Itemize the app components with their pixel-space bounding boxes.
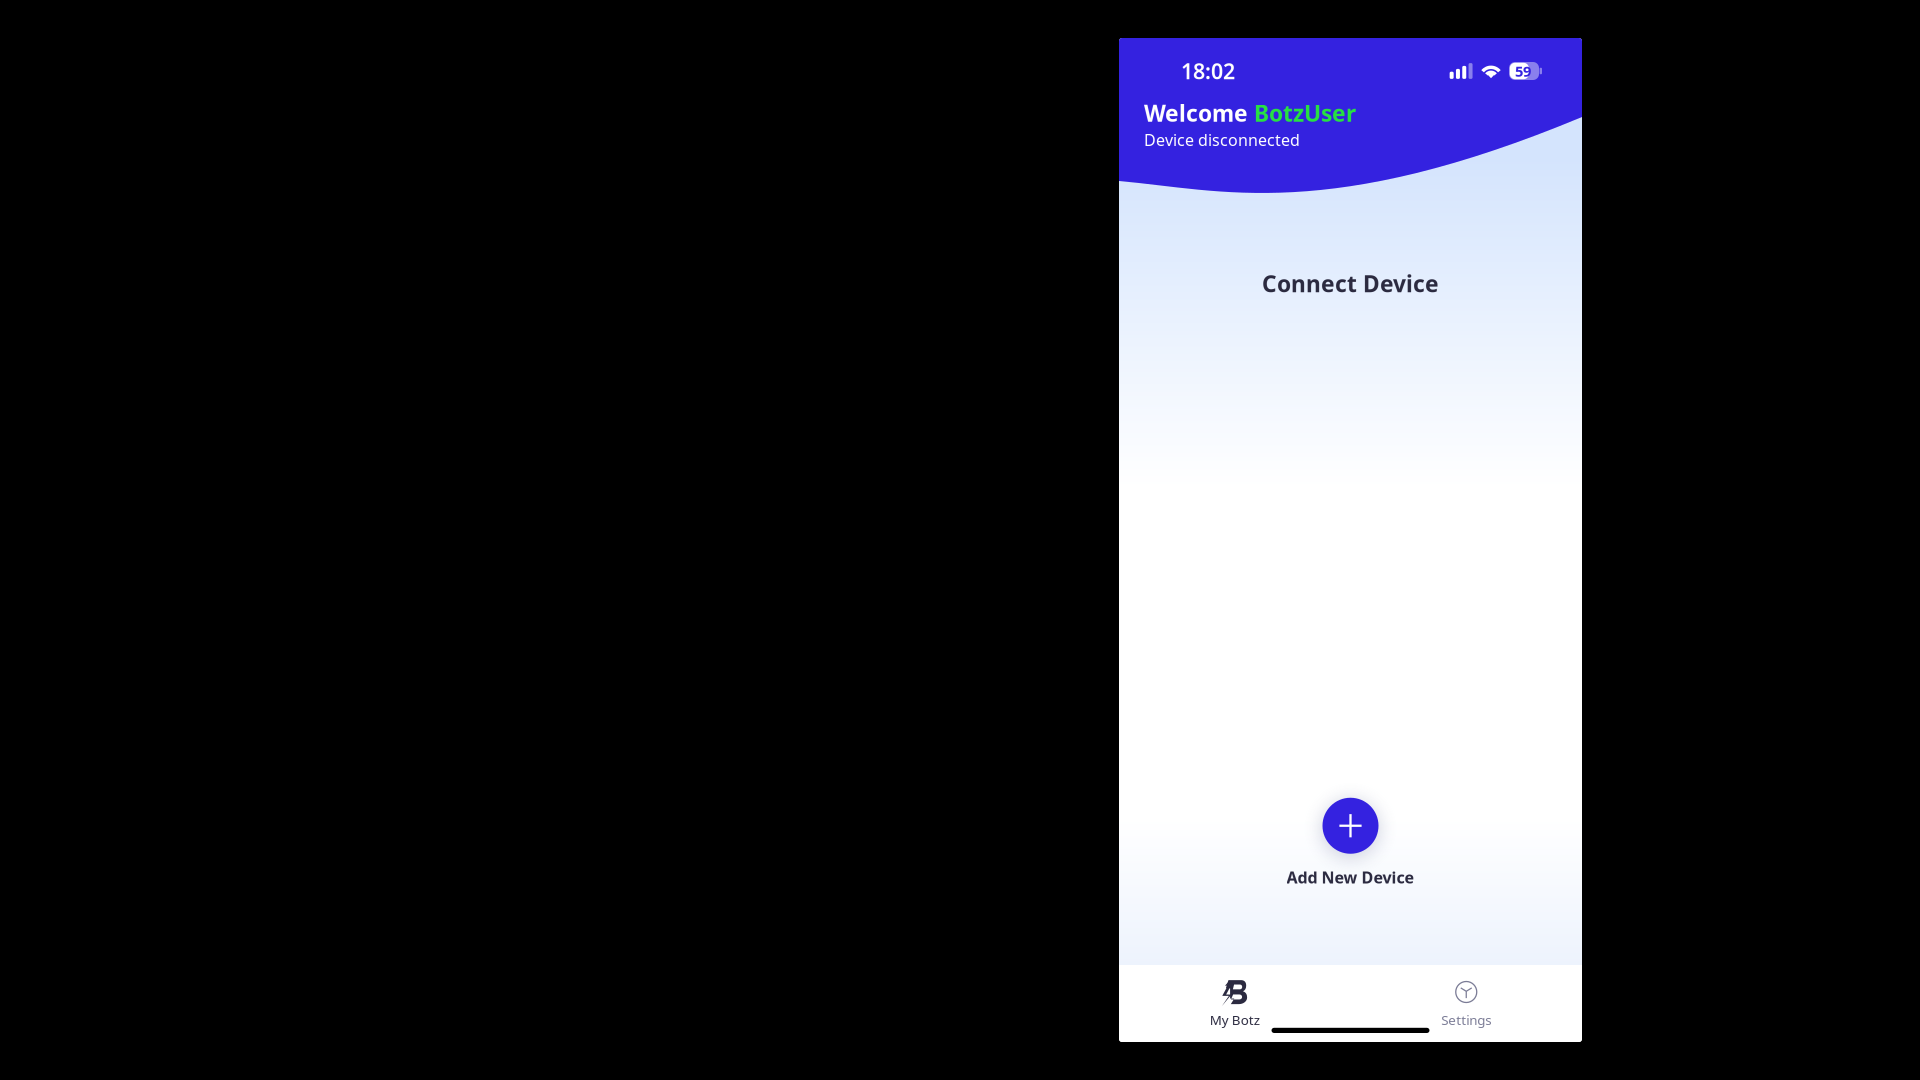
button[interactable]: Add New Device xyxy=(1286,798,1414,888)
staticText: 59 xyxy=(1515,61,1531,81)
button[interactable]: Settings xyxy=(1350,965,1582,1042)
staticText: Connect Device xyxy=(1262,268,1439,298)
staticText: BotzUser xyxy=(1254,98,1356,128)
staticText: Device disconnected xyxy=(1144,129,1300,150)
staticText: Add New Device xyxy=(1286,867,1414,888)
staticText: Settings xyxy=(1441,1011,1491,1029)
staticText: My Botz xyxy=(1210,1011,1260,1029)
staticText: Welcome xyxy=(1144,98,1254,128)
staticText: 18:02 xyxy=(1181,57,1235,85)
button[interactable]: My Botz xyxy=(1119,965,1350,1042)
